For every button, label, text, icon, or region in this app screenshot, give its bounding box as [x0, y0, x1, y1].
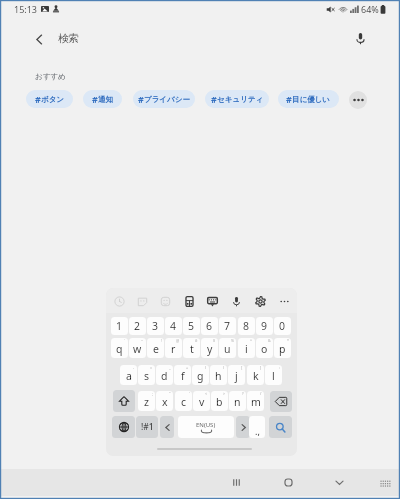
button[interactable]: More tags [349, 91, 367, 109]
button[interactable]: # [26, 90, 73, 108]
staticText: < [205, 391, 208, 396]
button[interactable]: Search [269, 416, 292, 438]
button[interactable]: u [219, 338, 236, 358]
button[interactable]: 5 [183, 317, 200, 335]
button[interactable]: 7 [219, 317, 236, 335]
staticText: 0 [279, 319, 286, 333]
staticText: k [253, 369, 259, 383]
button[interactable]: 3 [147, 317, 164, 335]
button[interactable]: l [265, 365, 282, 385]
button[interactable]: t [183, 338, 200, 358]
button[interactable]: i [238, 338, 255, 358]
button[interactable]: 9 [256, 317, 273, 335]
button[interactable]: # [205, 90, 269, 108]
button[interactable]: Space [178, 416, 234, 438]
staticText: & [268, 338, 271, 343]
button[interactable]: Text editing [181, 293, 197, 309]
button[interactable]: g [192, 365, 209, 385]
button[interactable]: x [156, 391, 173, 411]
staticText: _ [169, 365, 171, 370]
staticText: 1 [116, 319, 123, 333]
staticText: n [234, 395, 241, 409]
button[interactable]: y [201, 338, 218, 358]
button[interactable]: j [228, 365, 245, 385]
button[interactable]: m [247, 391, 264, 411]
staticText: % [231, 338, 234, 343]
button[interactable]: Keyboard modes [204, 293, 220, 309]
button[interactable]: Hide keyboard [325, 469, 353, 496]
button[interactable]: Recents [222, 469, 250, 496]
button[interactable]: 2 [129, 317, 146, 335]
button[interactable]: p [274, 338, 291, 358]
staticText: 9 [261, 319, 268, 333]
button[interactable]: z [138, 391, 155, 411]
button[interactable]: Home [274, 469, 302, 496]
staticText: b [216, 395, 223, 409]
staticText: u [224, 342, 231, 356]
button[interactable]: # [278, 90, 339, 108]
button[interactable]: o [256, 338, 273, 358]
staticText: おすすめ [35, 72, 66, 81]
staticText: " [169, 391, 171, 396]
button[interactable]: Stickers [134, 293, 150, 309]
staticText: 3 [152, 319, 159, 333]
button[interactable]: a [120, 365, 137, 385]
button[interactable]: q [111, 338, 128, 358]
button[interactable]: c [175, 391, 192, 411]
button[interactable]: ., [249, 416, 265, 438]
button[interactable]: Emoji [157, 293, 173, 309]
staticText: - [133, 365, 135, 370]
button[interactable]: 0 [274, 317, 291, 335]
staticText: プライバシー [144, 95, 190, 104]
staticText: !#1 [141, 421, 154, 433]
button[interactable]: Settings [252, 293, 268, 309]
button[interactable]: Voice input [228, 293, 244, 309]
staticText: 2 [134, 319, 141, 333]
button[interactable]: e [147, 338, 164, 358]
staticText: # [35, 93, 41, 105]
staticText: m [251, 395, 261, 409]
button[interactable]: Voice search [347, 25, 373, 51]
button[interactable]: Backspace [270, 391, 292, 412]
button[interactable]: Change language [112, 416, 135, 438]
button[interactable]: w [129, 338, 146, 358]
button[interactable]: Back [26, 26, 52, 52]
button[interactable]: d [156, 365, 173, 385]
staticText: # [92, 93, 98, 105]
button[interactable]: r [165, 338, 182, 358]
button[interactable]: n [229, 391, 246, 411]
button[interactable]: Next [236, 416, 250, 438]
button[interactable]: Recent [111, 293, 127, 309]
staticText: ] [260, 365, 262, 370]
button[interactable]: h [210, 365, 227, 385]
button[interactable]: # [133, 90, 195, 108]
button[interactable]: b [211, 391, 228, 411]
staticText: 5 [188, 319, 195, 333]
button[interactable]: s [138, 365, 155, 385]
button[interactable]: More options [276, 293, 292, 309]
staticText: $ [213, 338, 216, 343]
staticText: v [199, 395, 205, 409]
button[interactable]: 8 [238, 317, 255, 335]
staticText: + [186, 365, 189, 370]
button[interactable]: k [247, 365, 264, 385]
staticText: # [138, 93, 144, 105]
button[interactable]: 4 [165, 317, 182, 335]
staticText: > [223, 391, 226, 396]
button[interactable]: Shift [113, 390, 135, 412]
staticText: h [215, 369, 222, 383]
button[interactable]: !#1 [136, 416, 158, 438]
button[interactable]: # [83, 90, 122, 108]
staticText: # [195, 338, 198, 343]
button[interactable]: 1 [111, 317, 128, 335]
button[interactable]: 6 [201, 317, 218, 335]
staticText: 7 [224, 319, 231, 333]
button[interactable]: v [193, 391, 210, 411]
button[interactable]: f [174, 365, 191, 385]
staticText: @ [176, 338, 180, 343]
button[interactable]: Previous [160, 416, 174, 438]
staticText: * [287, 338, 289, 343]
staticText: 目に優しい [292, 95, 331, 104]
button[interactable]: Switch keyboard [374, 469, 396, 496]
staticText: EN(US) [196, 421, 216, 429]
